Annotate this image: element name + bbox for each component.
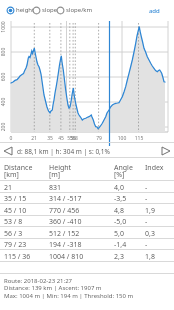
button[interactable]: height	[6, 4, 35, 16]
staticText: slope	[42, 6, 58, 14]
staticText: 58	[65, 135, 85, 142]
staticText: 800	[0, 45, 7, 59]
staticText: Route: 2018-02-23 21:27	[4, 277, 73, 285]
button[interactable]	[0, 249, 174, 261]
staticText: height	[16, 6, 35, 14]
staticText: Angle	[114, 163, 133, 173]
staticText: 1,9	[145, 206, 155, 216]
staticText: -3,5	[114, 194, 127, 204]
button[interactable]	[0, 203, 174, 215]
button[interactable]: Next point	[159, 144, 172, 157]
staticText: 400	[0, 95, 7, 109]
staticText: 770 / 456	[49, 206, 80, 216]
staticText: 831	[49, 183, 62, 193]
staticText: add	[149, 7, 160, 15]
staticText: [m]	[49, 170, 61, 180]
staticText: Index	[145, 163, 164, 173]
staticText: -	[145, 183, 148, 193]
staticText: 56	[63, 135, 83, 142]
staticText: [%]	[114, 170, 125, 180]
button[interactable]	[0, 192, 174, 204]
staticText: 200	[0, 120, 7, 134]
staticText: 0	[1, 135, 21, 142]
staticText: 79	[89, 135, 109, 142]
staticText: 100	[112, 135, 132, 142]
staticText: 4,0	[114, 183, 124, 193]
staticText: 35	[40, 135, 60, 142]
staticText: -	[145, 240, 148, 250]
staticText: 21	[4, 183, 13, 193]
staticText: 79 / 23	[4, 240, 27, 250]
staticText: 0,3	[145, 229, 155, 239]
staticText: 4,8	[114, 206, 124, 216]
button[interactable]	[0, 226, 174, 238]
staticText: -	[145, 194, 148, 204]
staticText: Distance	[4, 163, 33, 173]
staticText: -	[145, 217, 148, 227]
staticText: -1,4	[114, 240, 127, 250]
staticText: 512 / 152	[49, 229, 80, 239]
staticText: 360 / -410	[49, 217, 82, 227]
staticText: [km]	[4, 170, 19, 180]
button[interactable]: slope	[32, 4, 58, 16]
staticText: 600	[0, 70, 7, 84]
staticText: 55	[60, 135, 80, 142]
staticText: slope/km	[66, 6, 93, 14]
staticText: 194 / -318	[49, 240, 82, 250]
staticText: 1000	[0, 20, 7, 34]
staticText: 56 / 3	[4, 229, 23, 239]
staticText: 115 / 36	[4, 252, 31, 262]
staticText: 45 / 10	[4, 206, 27, 216]
staticText: 45	[51, 135, 71, 142]
staticText: Height	[49, 163, 72, 173]
staticText: 5,0	[114, 229, 124, 239]
staticText: 35 / 15	[4, 194, 27, 204]
button[interactable]	[0, 215, 174, 227]
staticText: 1004 / 810	[49, 252, 84, 262]
staticText: 314 / -517	[49, 194, 82, 204]
button[interactable]: Previous point	[2, 144, 15, 157]
staticText: Max: 1004 m | Min: 194 m | Threshold: 15…	[4, 292, 134, 300]
staticText: 1,8	[145, 252, 155, 262]
staticText: 21	[24, 135, 44, 142]
button[interactable]: slope/km	[56, 4, 93, 16]
staticText: 53 / 8	[4, 217, 23, 227]
button[interactable]	[0, 238, 174, 250]
button[interactable]: add	[146, 4, 170, 16]
button[interactable]	[0, 180, 174, 192]
staticText: -5,0	[114, 217, 127, 227]
staticText: 115	[129, 135, 149, 142]
staticText: Distance: 139 km | Ascent: 1907 m	[4, 284, 102, 292]
staticText: 2,3	[114, 252, 124, 262]
staticText: d: 88,1 km | h: 304 m | s: 0,1%	[17, 147, 110, 156]
